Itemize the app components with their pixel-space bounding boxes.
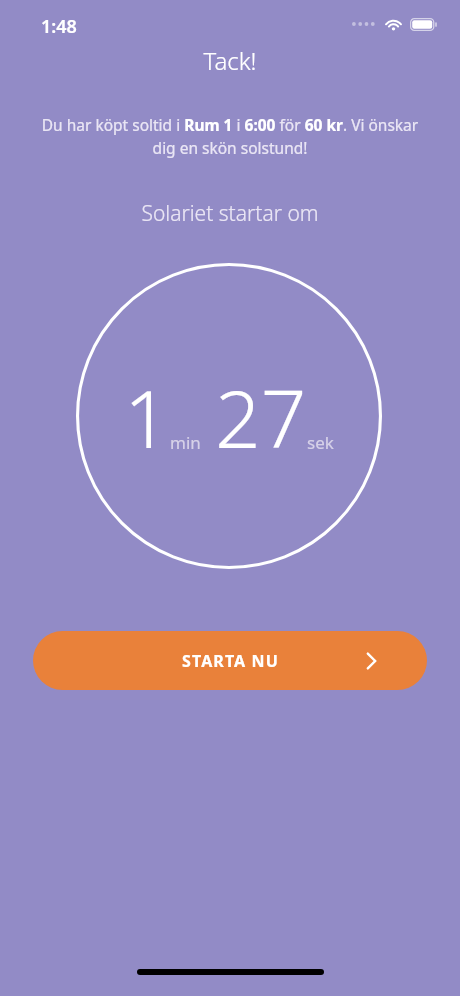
staticText: sek [307,431,334,454]
staticText: 1:48 [41,14,77,39]
staticText: STARTA NU [182,650,279,672]
staticText: 27 [215,362,307,471]
button[interactable]: STARTA NU [33,631,427,690]
staticText: Tack! [0,44,460,77]
staticText: Solariet startar om [0,199,460,228]
staticText: 1 [124,362,170,471]
staticText: min [170,431,201,454]
other: Start now [361,651,381,671]
staticText: Du har köpt soltid i Rum 1 i 6:00 för 60… [38,114,422,159]
